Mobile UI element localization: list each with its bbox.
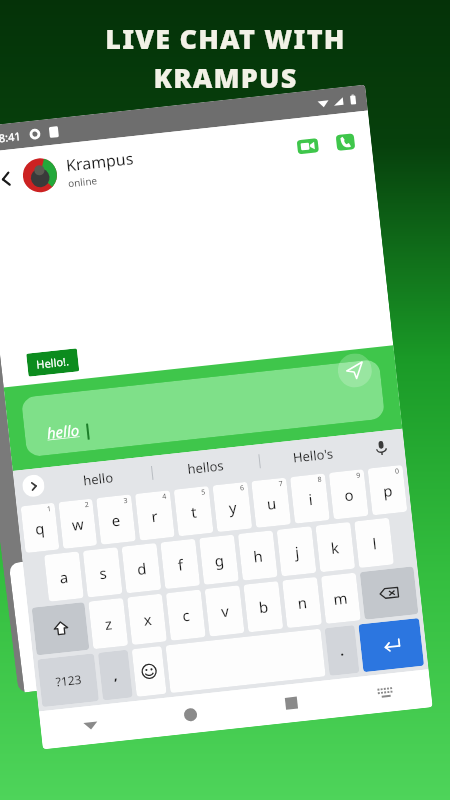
staticText: e xyxy=(111,510,122,531)
staticText: t xyxy=(190,501,198,522)
staticText: h xyxy=(252,545,264,566)
button[interactable]: Keyboard xyxy=(339,669,433,717)
button[interactable]: hello xyxy=(21,359,385,457)
staticText: LIVE CHAT WITH xyxy=(105,20,346,57)
staticText: 8:41 xyxy=(0,128,21,145)
button[interactable]: v xyxy=(205,585,245,637)
button[interactable]: f xyxy=(160,539,200,589)
button[interactable]: Back xyxy=(39,701,142,749)
staticText: hello xyxy=(46,420,81,443)
button[interactable]: t xyxy=(174,486,214,536)
button[interactable] xyxy=(32,602,89,655)
staticText: 3 xyxy=(123,496,129,506)
staticText: 9 xyxy=(356,470,362,481)
staticText: Hello!. xyxy=(35,353,70,372)
staticText: d xyxy=(136,558,148,579)
button[interactable] xyxy=(165,629,326,693)
button[interactable]: u xyxy=(251,477,291,528)
button[interactable]: More xyxy=(21,474,45,498)
staticText: hello xyxy=(82,468,114,489)
staticText: k xyxy=(330,537,341,558)
staticText: o xyxy=(343,484,355,505)
staticText: hellos xyxy=(187,456,225,478)
staticText: Krampus xyxy=(65,147,135,176)
button[interactable]: p xyxy=(367,465,407,515)
staticText: 1 xyxy=(46,504,53,514)
button[interactable]: q xyxy=(21,503,59,553)
button[interactable]: Voice input xyxy=(365,429,398,466)
staticText: x xyxy=(142,609,153,630)
button[interactable]: o xyxy=(329,469,369,520)
button[interactable]: , xyxy=(98,650,133,701)
staticText: w xyxy=(71,514,85,535)
staticText: m xyxy=(332,587,349,609)
button[interactable]: e xyxy=(96,494,136,545)
staticText: 4 xyxy=(162,491,168,502)
staticText: 7 xyxy=(278,479,284,489)
staticText: p xyxy=(382,480,394,501)
button[interactable]: hello xyxy=(42,456,153,502)
staticText: b xyxy=(258,596,270,617)
staticText: Hello's xyxy=(292,444,335,467)
staticText: 5 xyxy=(201,487,207,498)
button[interactable]: Send xyxy=(336,352,374,389)
staticText: a xyxy=(58,567,69,587)
button[interactable]: l xyxy=(354,518,394,568)
staticText: online xyxy=(67,173,98,190)
staticText: l xyxy=(372,533,378,553)
button[interactable]: d xyxy=(121,543,161,593)
button[interactable]: hellos xyxy=(151,444,261,490)
button[interactable]: i xyxy=(290,473,330,524)
staticText: v xyxy=(220,600,230,621)
staticText: f xyxy=(177,554,185,575)
button[interactable] xyxy=(132,646,167,697)
staticText: j xyxy=(294,542,300,562)
button[interactable]: c xyxy=(166,589,206,641)
button[interactable]: a xyxy=(44,551,84,602)
staticText: 0 xyxy=(394,466,401,477)
staticText: y xyxy=(228,497,238,518)
staticText: r xyxy=(150,506,159,526)
button[interactable]: w xyxy=(58,499,97,549)
button[interactable]: m xyxy=(321,572,361,624)
button[interactable] xyxy=(360,566,419,620)
staticText: , xyxy=(112,666,118,684)
button[interactable]: Voice call xyxy=(330,125,363,159)
button[interactable]: Recents xyxy=(239,679,343,728)
staticText: ?123 xyxy=(55,671,82,689)
button[interactable]: Hello's xyxy=(258,433,368,478)
button[interactable]: g xyxy=(199,534,239,585)
button[interactable]: j xyxy=(277,526,316,576)
staticText: 2 xyxy=(84,500,90,510)
staticText: s xyxy=(98,562,108,583)
button[interactable]: . xyxy=(324,625,359,676)
button[interactable]: b xyxy=(243,581,283,632)
button[interactable]: x xyxy=(127,594,167,645)
button[interactable]: z xyxy=(88,598,128,649)
button[interactable]: y xyxy=(212,482,252,532)
button[interactable]: h xyxy=(238,530,278,581)
button[interactable]: ?123 xyxy=(37,653,99,707)
staticText: z xyxy=(104,613,114,634)
staticText: 8 xyxy=(317,475,323,485)
button[interactable] xyxy=(358,618,424,672)
button[interactable]: n xyxy=(282,577,322,628)
button[interactable]: Home xyxy=(138,690,243,739)
staticText: KRAMPUS xyxy=(153,59,298,96)
staticText: u xyxy=(266,493,278,514)
button[interactable]: Back xyxy=(0,162,23,195)
button[interactable]: s xyxy=(83,547,123,598)
staticText: g xyxy=(213,550,226,571)
staticText: n xyxy=(297,592,309,613)
staticText: . xyxy=(339,641,345,660)
button[interactable]: r xyxy=(135,490,175,541)
staticText: q xyxy=(34,518,46,539)
staticText: i xyxy=(307,489,313,509)
button[interactable]: Video call xyxy=(292,130,325,163)
button[interactable]: k xyxy=(315,522,355,572)
staticText: c xyxy=(181,605,191,625)
staticText: 6 xyxy=(239,483,245,493)
